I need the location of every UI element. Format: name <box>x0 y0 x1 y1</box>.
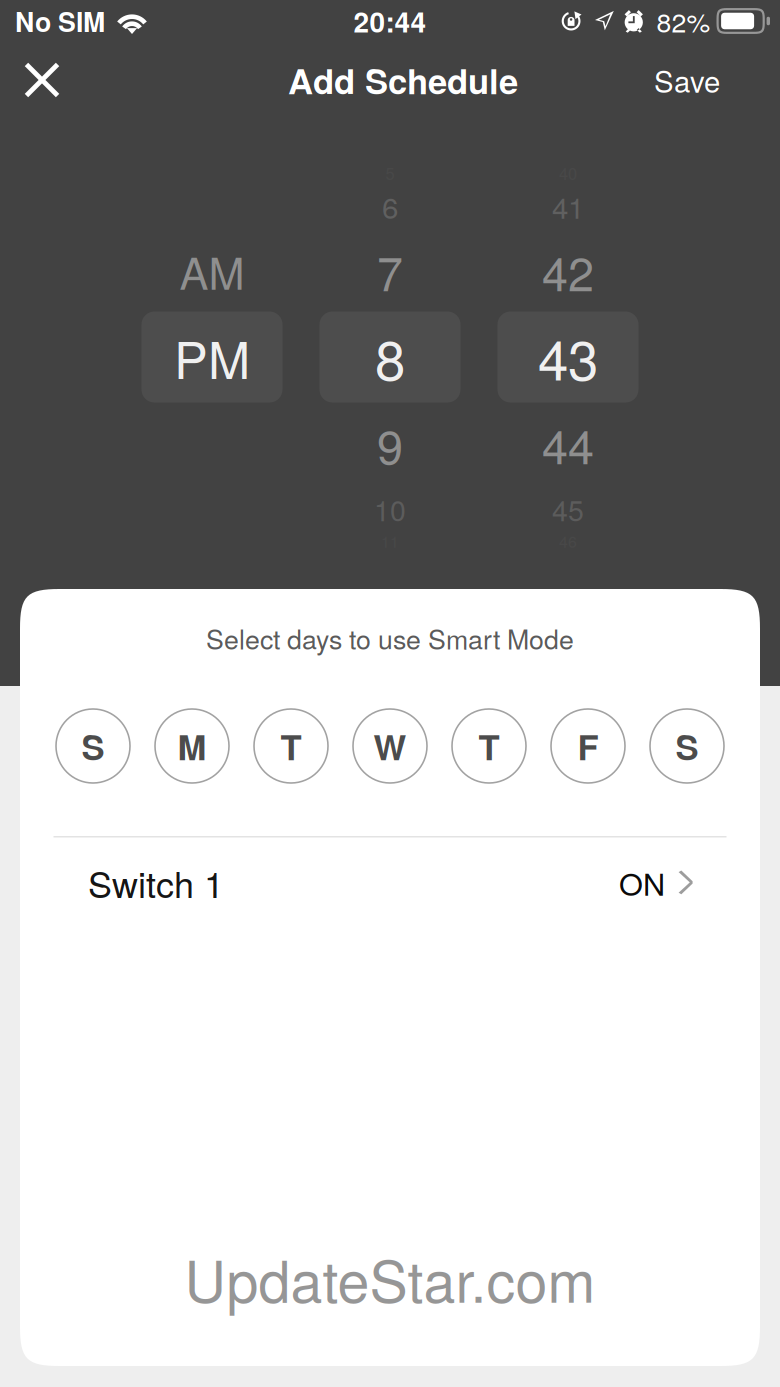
staticText: Select days to use Smart Mode <box>206 619 574 657</box>
staticText: 44 <box>542 410 594 478</box>
button[interactable]: Close <box>4 42 80 118</box>
staticText: 42 <box>542 237 594 304</box>
staticText: Save <box>654 59 720 101</box>
staticText: 82% <box>656 2 710 40</box>
button[interactable]: W <box>353 709 427 783</box>
button[interactable]: T <box>452 709 526 783</box>
button[interactable]: Save <box>590 42 720 118</box>
staticText: 10 <box>374 489 406 529</box>
staticText: T <box>280 721 301 771</box>
button[interactable]: Switch 1 <box>20 837 760 927</box>
staticText: No SIM <box>15 2 105 40</box>
staticText: 8 <box>375 318 405 396</box>
staticText: M <box>177 721 206 771</box>
staticText: S <box>81 721 104 771</box>
staticText: Add Schedule <box>288 55 518 105</box>
staticText: 7 <box>377 237 403 304</box>
staticText: 41 <box>552 185 584 227</box>
button[interactable]: F <box>551 709 625 783</box>
staticText: 43 <box>538 318 598 396</box>
button[interactable]: S <box>650 709 724 783</box>
staticText: W <box>373 721 406 771</box>
staticText: F <box>577 721 598 771</box>
staticText: 9 <box>377 410 403 478</box>
staticText: AM <box>179 240 244 302</box>
staticText: Switch 1 <box>88 857 224 908</box>
staticText: T <box>478 721 499 771</box>
staticText: UpdateStar.com <box>184 1237 595 1319</box>
staticText: 6 <box>382 185 398 227</box>
button[interactable]: S <box>56 709 130 783</box>
staticText: ON <box>619 860 665 904</box>
staticText: PM <box>174 321 250 393</box>
staticText: 45 <box>552 489 584 529</box>
button[interactable]: T <box>254 709 328 783</box>
staticText: S <box>675 721 698 771</box>
button[interactable]: M <box>155 709 229 783</box>
staticText: 20:44 <box>353 1 426 41</box>
